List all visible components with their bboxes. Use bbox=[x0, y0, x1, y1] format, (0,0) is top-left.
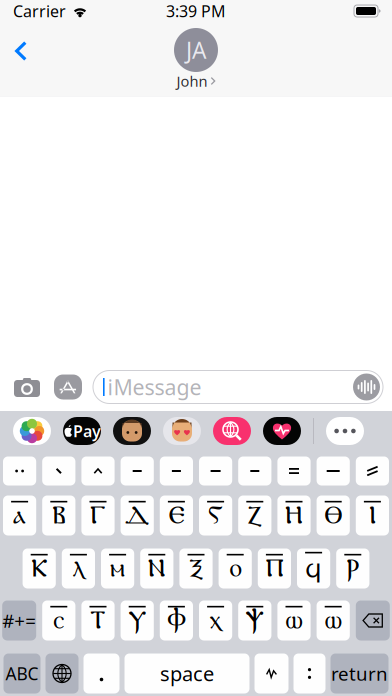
staticText: #+= bbox=[2, 608, 36, 633]
button[interactable]: Ⲍ bbox=[238, 495, 271, 535]
button[interactable]: Ⲃ bbox=[42, 495, 75, 535]
button[interactable]: Camera bbox=[11, 371, 43, 403]
button[interactable]: Memoji Stickers bbox=[113, 417, 151, 445]
button[interactable]: Period bbox=[83, 653, 119, 693]
button[interactable]: Ⲧ bbox=[81, 600, 115, 640]
button[interactable]: Circumflex bbox=[81, 456, 115, 485]
button[interactable]: Music bbox=[213, 417, 251, 445]
button[interactable]: ⲗ bbox=[62, 548, 95, 588]
button[interactable]: Double oblique bbox=[356, 456, 389, 485]
staticText: ⲗ bbox=[72, 556, 84, 581]
staticText: Pay bbox=[73, 420, 101, 442]
staticText: space bbox=[160, 660, 214, 687]
button[interactable]: Macron bbox=[199, 456, 232, 485]
button[interactable]: Macron bbox=[238, 456, 271, 485]
button[interactable]: Ⲡ bbox=[258, 548, 291, 588]
staticText: Ⲅ bbox=[90, 503, 106, 528]
button[interactable]: Macron bbox=[160, 456, 193, 485]
staticText: ⲁ bbox=[13, 503, 26, 528]
staticText: Ⲏ bbox=[285, 503, 303, 528]
button[interactable]: Ⲛ bbox=[140, 548, 173, 588]
button[interactable]: Ⲑ bbox=[317, 495, 350, 535]
button[interactable]: Grave bbox=[42, 456, 75, 485]
staticText: ABC bbox=[5, 662, 38, 685]
button[interactable]: Ⲇ bbox=[121, 495, 154, 535]
staticText: iMessage bbox=[108, 373, 202, 401]
staticText: ϥ bbox=[305, 554, 322, 583]
button[interactable]: Colon bbox=[293, 653, 325, 693]
button[interactable]: ⲱ bbox=[277, 600, 311, 640]
staticText: 3:39 PM bbox=[166, 0, 226, 22]
button[interactable]: Ⲓ bbox=[356, 495, 389, 535]
button[interactable]: ⲁ bbox=[3, 495, 36, 535]
button[interactable]: ⲭ bbox=[199, 600, 232, 640]
staticText: Ⲋ bbox=[208, 503, 223, 528]
button[interactable]: Delete bbox=[356, 600, 390, 640]
button[interactable]: Apple Pay bbox=[63, 417, 101, 445]
button[interactable]: Ⲫ bbox=[160, 600, 193, 640]
button[interactable]: Next keyboard bbox=[45, 653, 78, 693]
button[interactable]: iMessage text field bbox=[93, 370, 383, 403]
staticText: Ⲫ bbox=[167, 608, 186, 633]
button[interactable]: Long macron bbox=[317, 456, 350, 485]
button[interactable]: Djinkim bbox=[254, 653, 288, 693]
button[interactable]: Double macron bbox=[277, 456, 311, 485]
button[interactable]: Ⲉ bbox=[160, 495, 193, 535]
staticText: ⲱ bbox=[285, 608, 302, 633]
button[interactable]: More apps bbox=[326, 417, 364, 445]
staticText: Ⲩ bbox=[128, 608, 146, 633]
staticText: ⲙ bbox=[110, 556, 125, 581]
staticText: Ⲓ bbox=[369, 503, 376, 528]
button[interactable]: space bbox=[124, 653, 249, 693]
button[interactable]: ⲥ bbox=[42, 600, 75, 640]
button[interactable]: Memoji bbox=[163, 417, 201, 445]
staticText: Ⲕ bbox=[31, 556, 47, 581]
staticText: Carrier bbox=[13, 0, 66, 22]
staticText: ⲟ bbox=[229, 556, 241, 581]
staticText: Ⲯ bbox=[245, 608, 264, 633]
button[interactable]: ϥ bbox=[297, 548, 330, 588]
button[interactable]: Symbols bbox=[2, 600, 36, 640]
staticText: Ⲉ bbox=[168, 503, 184, 528]
button[interactable]: ⲙ bbox=[101, 548, 134, 588]
button[interactable]: Ⲅ bbox=[81, 495, 115, 535]
staticText: Ⲡ bbox=[265, 556, 283, 581]
button[interactable]: Macron bbox=[121, 456, 154, 485]
staticText: Ⲧ bbox=[90, 608, 106, 633]
button[interactable]: ABC keyboard bbox=[3, 653, 40, 693]
staticText: Ⲝ bbox=[189, 556, 203, 581]
staticText: ⲥ bbox=[53, 608, 64, 633]
button[interactable]: Ⲝ bbox=[179, 548, 213, 588]
button[interactable]: Ⲣ bbox=[336, 548, 369, 588]
staticText: ⲱ bbox=[325, 608, 342, 633]
button[interactable]: Ⲩ bbox=[121, 600, 154, 640]
staticText: Ⲍ bbox=[247, 503, 262, 528]
button[interactable]: ⲟ bbox=[219, 548, 252, 588]
button[interactable]: Ⲕ bbox=[23, 548, 56, 588]
staticText: JA bbox=[186, 35, 206, 65]
staticText: Ⲃ bbox=[52, 503, 65, 528]
staticText: Ⲇ bbox=[125, 503, 150, 528]
button[interactable]: Ⲋ bbox=[199, 495, 232, 535]
staticText: return bbox=[331, 661, 388, 686]
button[interactable]: return bbox=[330, 653, 388, 693]
staticText: ⲭ bbox=[210, 608, 222, 633]
button[interactable]: Ⲯ bbox=[238, 600, 271, 640]
button[interactable]: ⲱ bbox=[317, 600, 350, 640]
staticText: Ⲣ bbox=[346, 556, 359, 581]
staticText: John bbox=[176, 71, 207, 91]
button[interactable]: Back bbox=[0, 24, 38, 70]
button[interactable]: Photos bbox=[13, 417, 51, 445]
staticText: Ⲑ bbox=[324, 503, 342, 528]
button[interactable]: Fitness bbox=[263, 417, 301, 445]
button[interactable]: App Store bbox=[52, 371, 84, 403]
button[interactable]: Ⲏ bbox=[277, 495, 311, 535]
staticText: Ⲛ bbox=[148, 556, 166, 581]
button[interactable]: Diaeresis bbox=[3, 456, 36, 485]
button[interactable]: John, contact details bbox=[174, 24, 218, 94]
